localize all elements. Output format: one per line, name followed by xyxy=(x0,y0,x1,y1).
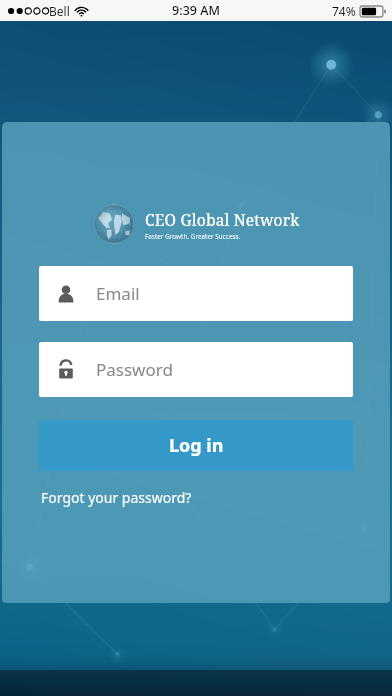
staticText: Password xyxy=(96,358,173,381)
button[interactable]: Forgot your password? xyxy=(39,484,194,511)
button[interactable]: Password xyxy=(39,342,353,397)
staticText: Email xyxy=(96,282,140,305)
staticText: CEO Global Network xyxy=(145,209,300,230)
staticText: Forgot your password? xyxy=(41,488,192,507)
button[interactable]: Email xyxy=(39,266,353,321)
staticText: Log in xyxy=(169,433,224,458)
staticText: Faster Growth. Greater Success. xyxy=(145,232,241,240)
staticText: Bell xyxy=(49,3,70,19)
button[interactable]: Log in xyxy=(39,420,353,471)
staticText: 9:39 AM xyxy=(172,2,220,19)
staticText: 74% xyxy=(332,3,356,19)
